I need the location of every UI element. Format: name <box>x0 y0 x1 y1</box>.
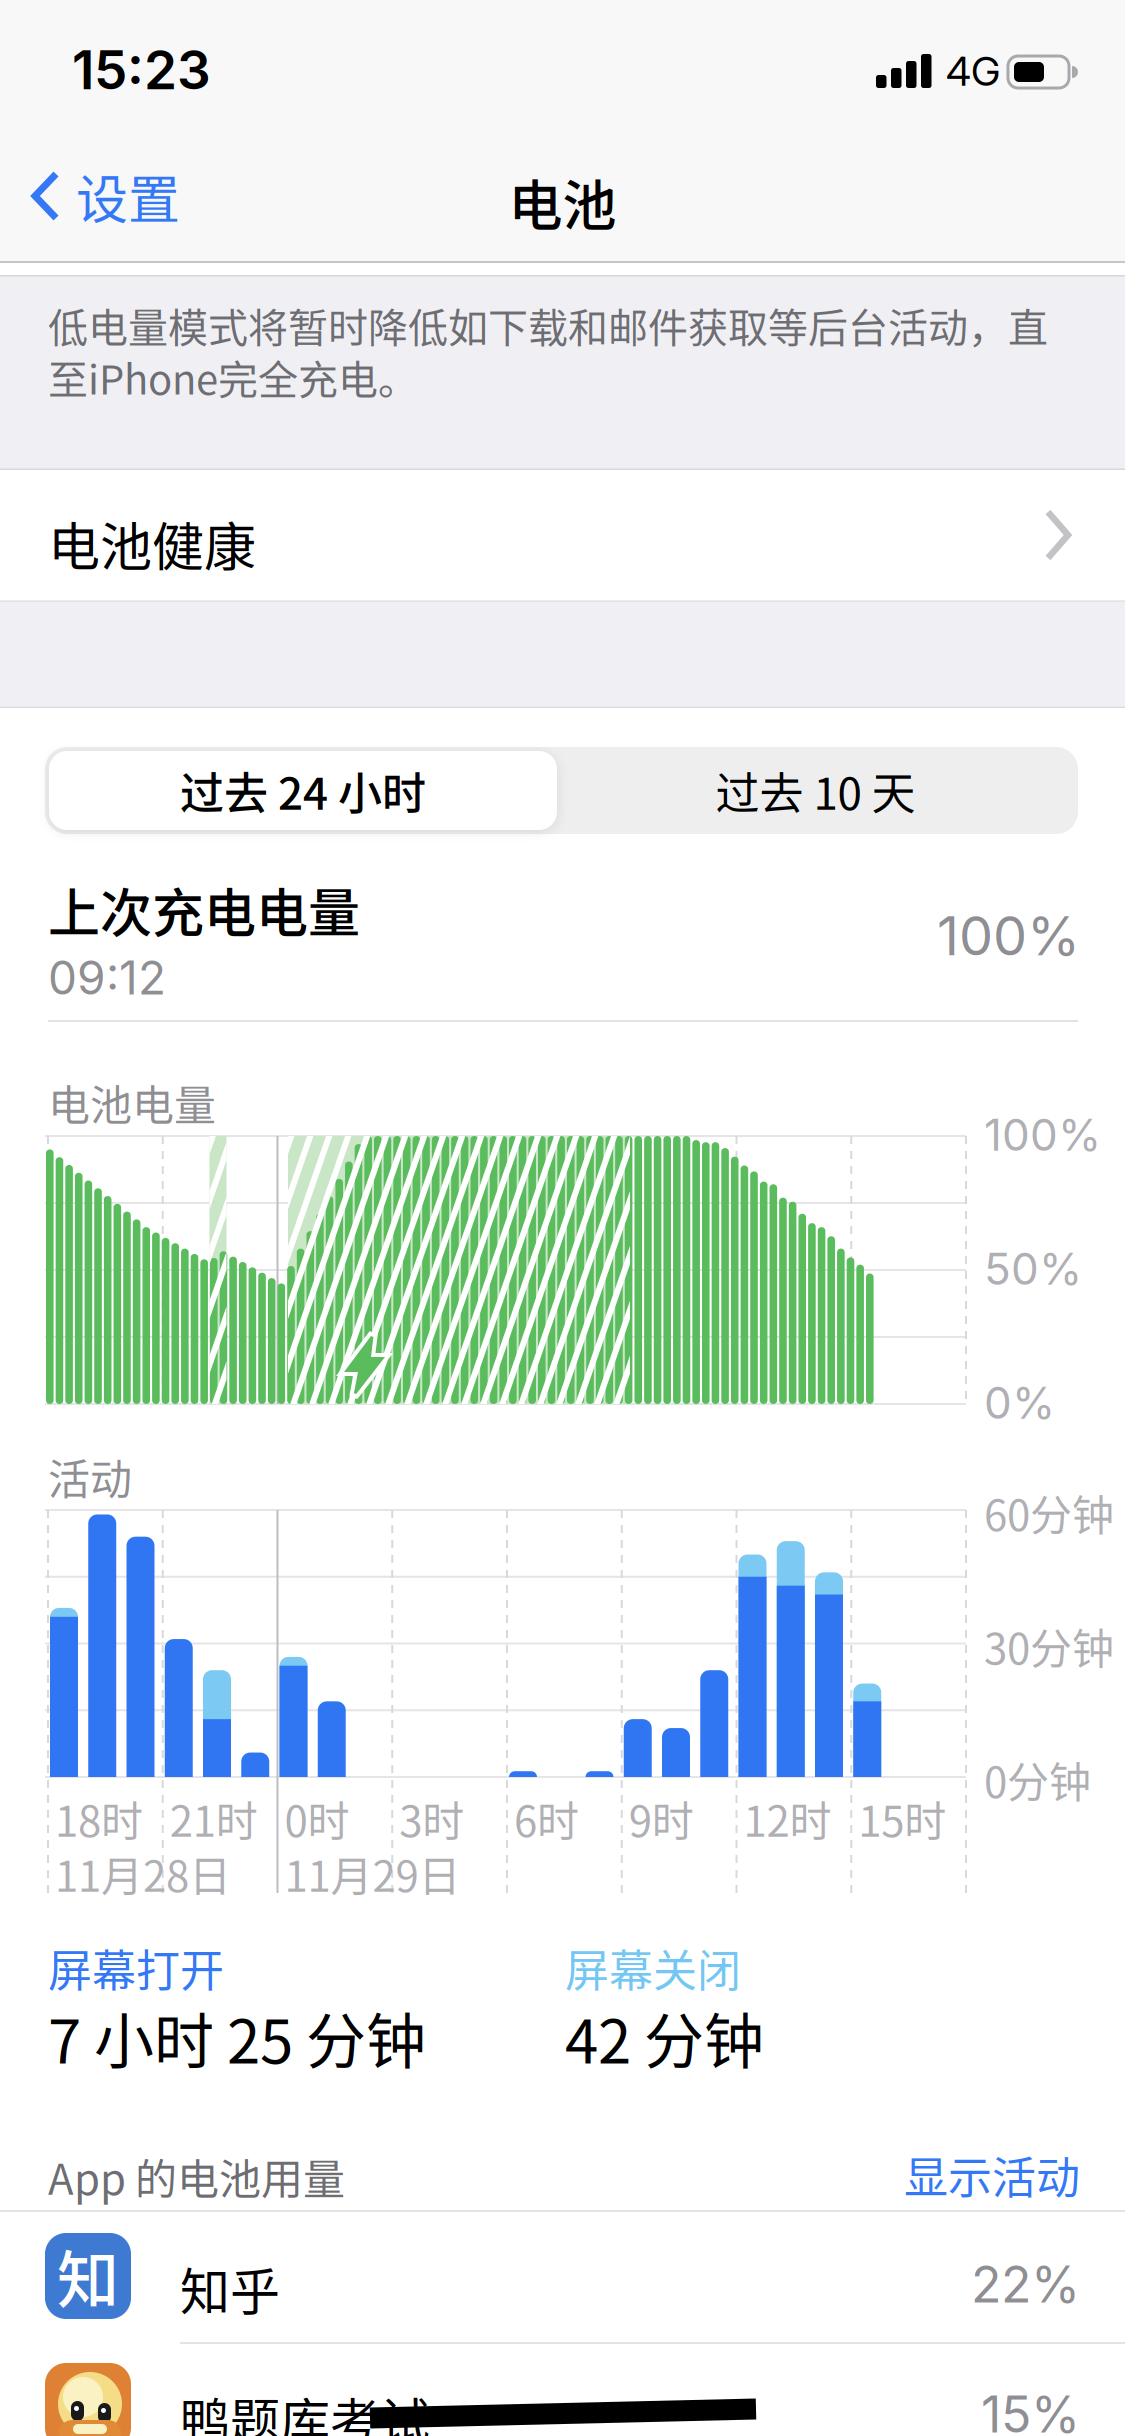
staticText: 过去 10 天 <box>715 759 915 822</box>
staticText: 0% <box>984 1376 1055 1429</box>
staticText: 显示活动 <box>904 2143 1080 2207</box>
staticText: App 的电池用量 <box>48 2146 345 2207</box>
staticText: 15:23 <box>72 38 211 102</box>
button[interactable]: 鸭题库考试 <box>0 2344 1125 2436</box>
staticText: 09:12 <box>48 950 166 1006</box>
staticText: 0时 <box>284 1788 349 1849</box>
staticText: 22% <box>971 2254 1080 2314</box>
staticText: 60分钟 <box>984 1482 1114 1543</box>
staticText: 设置 <box>76 158 180 234</box>
staticText: 42 分钟 <box>565 1994 764 2081</box>
button[interactable]: 知 <box>0 2212 1125 2343</box>
staticText: 9时 <box>629 1788 694 1849</box>
staticText: 知 <box>57 2231 119 2321</box>
staticText: 100% <box>984 1108 1101 1161</box>
staticText: 上次充电电量 <box>48 872 360 947</box>
staticText: 50% <box>984 1242 1082 1295</box>
staticText: 屏幕打开 <box>48 1936 224 2000</box>
staticText: 低电量模式将暂时降低如下载和邮件获取等后台活动，直 <box>48 296 1048 354</box>
staticText: 15% <box>981 2384 1080 2436</box>
button[interactable]: 过去 24 小时 <box>49 751 557 830</box>
staticText: 活动 <box>48 1446 132 1507</box>
staticText: 11月28日 <box>55 1843 231 1904</box>
staticText: 电池 <box>508 163 616 241</box>
staticText: 电池电量 <box>48 1072 216 1133</box>
button[interactable]: 电池健康 <box>0 470 1125 600</box>
staticText: 0分钟 <box>984 1749 1091 1810</box>
staticText: 18时 <box>55 1788 143 1849</box>
staticText: 3时 <box>399 1788 464 1849</box>
staticText: 至iPhone完全充电。 <box>48 348 418 406</box>
staticText: 4G <box>946 47 1000 95</box>
staticText: 7 小时 25 分钟 <box>48 1994 426 2081</box>
staticText: 知乎 <box>180 2252 280 2324</box>
staticText: 21时 <box>170 1788 258 1849</box>
staticText: 11月29日 <box>284 1843 460 1904</box>
staticText: 电池健康 <box>48 506 256 581</box>
button[interactable]: 过去 10 天 <box>557 747 1074 834</box>
button[interactable]: 显示活动 <box>680 2143 1080 2207</box>
staticText: 100% <box>937 903 1080 968</box>
button[interactable]: 返回设置 <box>30 163 180 229</box>
staticText: 屏幕关闭 <box>565 1936 741 2000</box>
staticText: 15时 <box>858 1788 946 1849</box>
staticText: 6时 <box>514 1788 579 1849</box>
staticText: 12时 <box>743 1788 831 1849</box>
staticText: 鸭题库考试 <box>180 2382 430 2436</box>
staticText: 30分钟 <box>984 1615 1114 1676</box>
staticText: 过去 24 小时 <box>180 759 426 822</box>
